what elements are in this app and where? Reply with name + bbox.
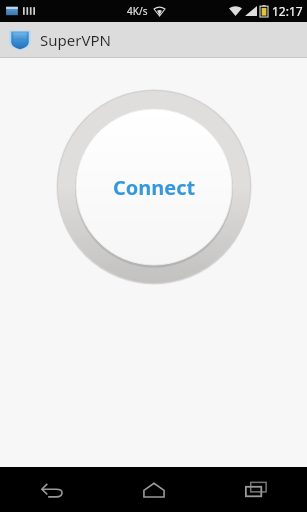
staticText: SuperVPN: [40, 30, 111, 50]
staticText: Connect: [113, 174, 196, 201]
staticText: 12:17: [272, 3, 303, 19]
button[interactable]: Recent apps: [205, 467, 307, 512]
staticText: 4K/s: [127, 4, 148, 18]
button[interactable]: Connect: [56, 89, 252, 285]
button[interactable]: Home: [103, 467, 205, 512]
button[interactable]: Back: [0, 467, 103, 512]
